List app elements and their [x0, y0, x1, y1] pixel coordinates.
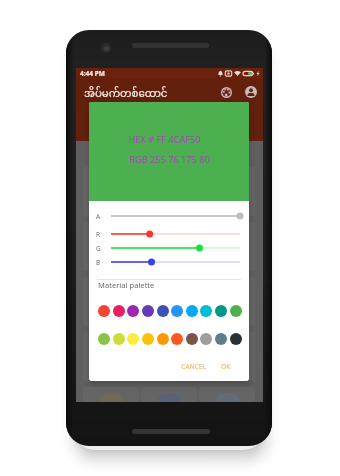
staticText: B: [96, 258, 101, 267]
button[interactable]: Colour swatch: [113, 305, 125, 317]
button[interactable]: Colour swatch: [157, 305, 169, 317]
button[interactable]: [199, 332, 255, 381]
button[interactable]: [199, 167, 255, 216]
staticText: OK: [221, 362, 231, 371]
button[interactable]: Colour swatch: [230, 333, 242, 345]
button[interactable]: [83, 332, 139, 381]
button[interactable]: [199, 387, 255, 402]
button[interactable]: Colour swatch: [157, 333, 169, 345]
button[interactable]: Colour swatch: [215, 305, 227, 317]
button[interactable]: [141, 387, 197, 402]
button[interactable]: [199, 222, 255, 271]
button[interactable]: Colour swatch: [98, 305, 110, 317]
button[interactable]: Colour swatch: [215, 333, 227, 345]
button[interactable]: Colour swatch: [230, 305, 242, 317]
button[interactable]: CANCEL: [175, 357, 212, 375]
button[interactable]: [141, 277, 197, 326]
button[interactable]: [83, 387, 139, 402]
button[interactable]: Colour swatch: [171, 333, 183, 345]
button[interactable]: Colour swatch: [113, 333, 125, 345]
staticText: R: [96, 230, 101, 239]
staticText: RGB 255 76 175 80: [129, 153, 210, 166]
staticText: A: [96, 212, 101, 221]
button[interactable]: [141, 222, 197, 271]
button[interactable]: Change theme colour: [218, 84, 234, 100]
staticText: အိပ်မက်တစ်ထောင်: [84, 83, 168, 105]
button[interactable]: [83, 277, 139, 326]
button[interactable]: [199, 277, 255, 326]
button[interactable]: Colour swatch: [186, 333, 198, 345]
button[interactable]: [141, 167, 197, 216]
button[interactable]: Colour swatch: [186, 305, 198, 317]
button[interactable]: Colour swatch: [200, 305, 212, 317]
button[interactable]: [83, 167, 139, 216]
staticText: CANCEL: [181, 362, 207, 371]
button[interactable]: Colour swatch: [98, 333, 110, 345]
button[interactable]: OK: [215, 357, 237, 375]
button[interactable]: [141, 332, 197, 381]
button[interactable]: Colour swatch: [171, 305, 183, 317]
button[interactable]: Account: [243, 84, 259, 100]
staticText: 4:44 PM: [80, 69, 105, 78]
staticText: Material palette: [98, 280, 155, 290]
button[interactable]: Colour swatch: [200, 333, 212, 345]
button[interactable]: Colour swatch: [142, 333, 154, 345]
staticText: HEX # FF 4CAF50: [128, 133, 201, 146]
button[interactable]: Colour swatch: [127, 305, 139, 317]
staticText: G: [96, 244, 101, 253]
button[interactable]: Colour swatch: [127, 333, 139, 345]
button[interactable]: Colour swatch: [142, 305, 154, 317]
button[interactable]: [83, 222, 139, 271]
